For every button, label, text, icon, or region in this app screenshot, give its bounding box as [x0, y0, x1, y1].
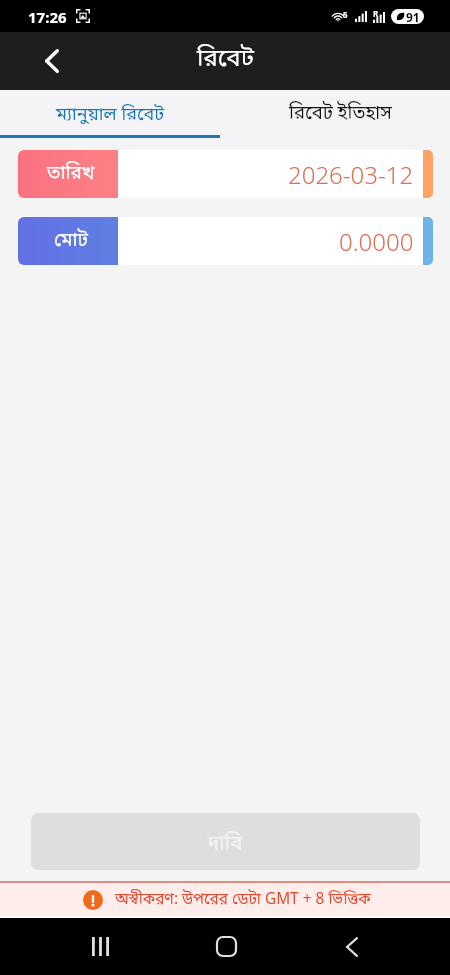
button[interactable]: 0.0000 — [118, 217, 423, 265]
staticText: অস্বীকরণ: উপরের ডেটা GMT + 8 ভিত্তিক — [115, 890, 371, 910]
staticText: রিবেট ইতিহাস — [289, 102, 392, 127]
button[interactable]: রিবেট ইতিহাস — [230, 90, 450, 135]
staticText: তারিখ — [47, 162, 95, 187]
button[interactable]: ম্যানুয়াল রিবেট — [0, 90, 220, 135]
staticText: R — [373, 8, 379, 19]
staticText: মোট — [54, 229, 88, 254]
staticText: 5 — [343, 9, 348, 20]
staticText: 17:26 — [28, 7, 67, 27]
staticText: 2026-03-12 — [288, 158, 414, 191]
button[interactable]: Home — [163, 918, 289, 975]
staticText: ম্যানুয়াল রিবেট — [56, 103, 164, 127]
button[interactable]: 2026-03-12 — [118, 150, 423, 198]
staticText: 0.0000 — [339, 225, 414, 258]
button[interactable]: Back — [24, 34, 79, 89]
button[interactable]: Recent apps — [37, 918, 163, 975]
staticText: 91 — [406, 9, 420, 24]
button[interactable]: Back — [289, 918, 415, 975]
staticText: রিবেট — [197, 44, 254, 76]
staticText: দাবি — [208, 831, 243, 858]
